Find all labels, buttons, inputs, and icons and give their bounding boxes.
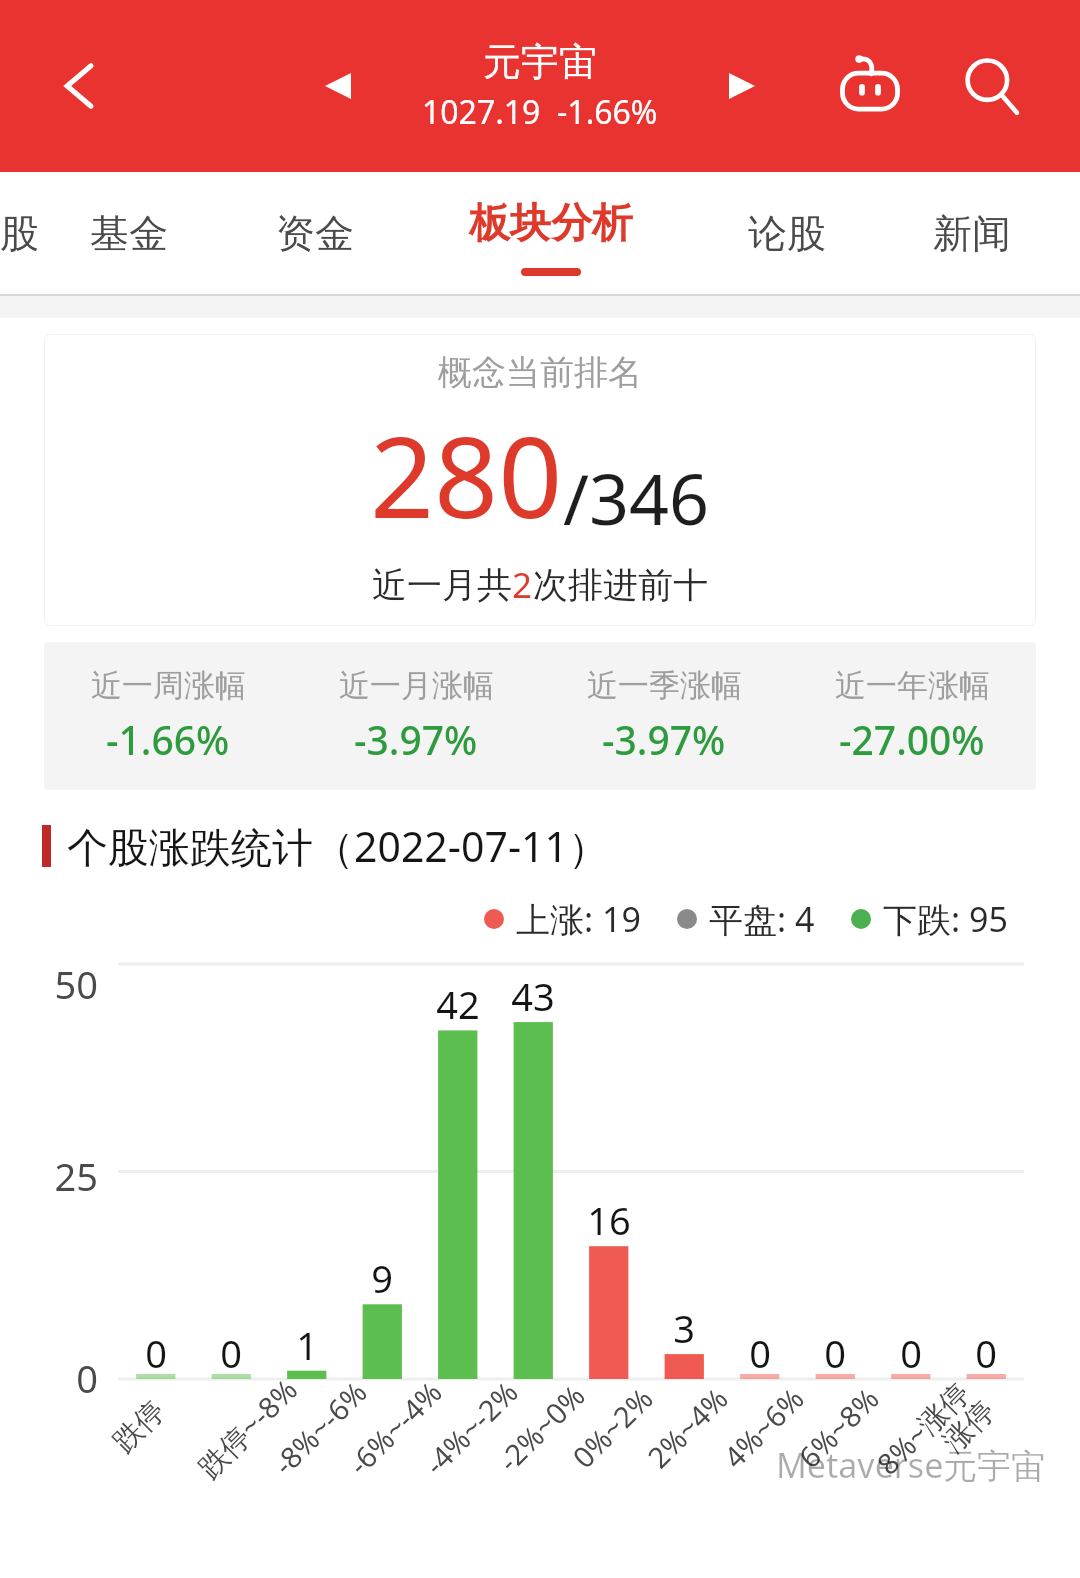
staticText: 下跌: 95 [883, 896, 1008, 942]
staticText: 元宇宙 [483, 38, 597, 86]
button[interactable]: Next sector [712, 56, 772, 116]
button[interactable]: Back [44, 50, 116, 122]
button[interactable]: 新闻 [879, 172, 1064, 294]
staticText: 板块分析 [469, 198, 633, 250]
button[interactable]: 近一年涨幅 [788, 666, 1036, 766]
staticText: 涨停 [935, 1393, 1003, 1460]
button[interactable]: 近一季涨幅 [540, 666, 788, 766]
button[interactable]: 资金 [222, 172, 407, 294]
staticText: 个股涨跌统计（2022-07-11） [67, 818, 610, 874]
button[interactable]: 上涨: 19 [484, 896, 641, 942]
staticText: 0 [14, 1352, 98, 1404]
staticText: -2%~0% [489, 1375, 593, 1479]
button[interactable]: 论股 [694, 172, 879, 294]
staticText: 280 [370, 398, 563, 551]
staticText: 42 [432, 978, 484, 1030]
staticText: 近一月共 [372, 563, 512, 607]
staticText: 25 [14, 1150, 98, 1202]
staticText: 近一周涨幅 [91, 666, 246, 705]
staticText: 跌停 [105, 1393, 173, 1460]
staticText: 跌停~-8% [189, 1370, 306, 1486]
staticText: -1.66% [106, 713, 230, 766]
staticText: 0%~2% [564, 1379, 660, 1476]
staticText: -8%~-6% [264, 1372, 375, 1483]
staticText: 平盘: 4 [709, 896, 815, 942]
button[interactable]: 股 [0, 172, 36, 294]
button[interactable]: Search [948, 42, 1036, 130]
staticText: 0 [130, 1327, 182, 1379]
button[interactable]: 板块分析 [407, 172, 694, 294]
staticText: 4%~6% [715, 1379, 811, 1476]
staticText: 43 [507, 970, 559, 1022]
staticText: 近一月涨幅 [339, 666, 494, 705]
staticText: 2%~4% [639, 1379, 735, 1476]
staticText: Metaverse元宇宙 [776, 1442, 1046, 1488]
staticText: 概念当前排名 [438, 351, 642, 394]
staticText: -27.00% [839, 713, 985, 766]
staticText: 50 [14, 958, 98, 1010]
staticText: 0 [205, 1327, 257, 1379]
staticText: 0 [734, 1327, 786, 1379]
staticText: -3.97% [602, 713, 726, 766]
button[interactable]: Previous sector [308, 56, 368, 116]
staticText: 8%~涨停 [868, 1373, 978, 1483]
staticText: 近一季涨幅 [587, 666, 742, 705]
button[interactable]: 概念当前排名 [44, 334, 1036, 626]
staticText: 16 [583, 1194, 635, 1246]
staticText: -3.97% [354, 713, 478, 766]
staticText: 9 [356, 1252, 408, 1304]
staticText: 3 [658, 1302, 710, 1354]
button[interactable]: Assistant robot [826, 42, 914, 130]
staticText: 次排进前十 [533, 563, 708, 607]
staticText: 上涨: 19 [516, 896, 641, 942]
staticText: 2 [512, 561, 533, 609]
staticText: -6%~-4% [339, 1372, 450, 1483]
staticText: 1 [281, 1319, 333, 1371]
staticText: 0 [960, 1327, 1012, 1379]
staticText: 1027.19 -1.66% [422, 90, 658, 134]
staticText: /346 [563, 450, 710, 545]
staticText: 论股 [748, 209, 826, 258]
button[interactable]: 基金 [36, 172, 222, 294]
button[interactable]: 近一周涨幅 [44, 666, 292, 766]
staticText: 0 [885, 1327, 937, 1379]
staticText: 6%~8% [790, 1379, 886, 1476]
staticText: 基金 [90, 209, 168, 258]
staticText: 0 [809, 1327, 861, 1379]
staticText: 资金 [276, 209, 354, 258]
button[interactable]: 平盘: 4 [677, 896, 815, 942]
staticText: 新闻 [933, 209, 1011, 258]
button[interactable]: 下跌: 95 [851, 896, 1008, 942]
button[interactable]: 近一月涨幅 [292, 666, 540, 766]
staticText: 近一年涨幅 [835, 666, 990, 705]
staticText: 股 [0, 209, 36, 258]
staticText: -4%~-2% [415, 1372, 526, 1483]
